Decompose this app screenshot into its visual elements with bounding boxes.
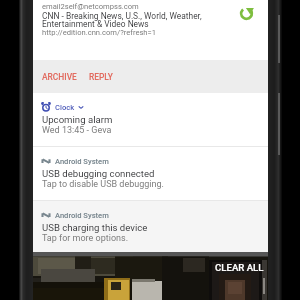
button[interactable]: email2self@netcompss.com — [33, 0, 268, 60]
staticText: Clock — [55, 103, 75, 112]
staticText: CLEAR ALL — [215, 262, 264, 273]
staticText: Upcoming alarm — [42, 114, 113, 125]
staticText: USB charging this device — [42, 222, 148, 233]
staticText: CNN - Breaking News, U.S., World, Weathe… — [42, 11, 202, 21]
staticText: Entertainment & Video News — [42, 19, 149, 29]
staticText: USB debugging connected — [42, 168, 155, 179]
staticText: email2self@netcompss.com — [42, 2, 139, 11]
staticText: Android System — [55, 211, 109, 220]
button[interactable]: Android System — [33, 147, 268, 200]
button[interactable]: REPLY — [89, 72, 113, 82]
button[interactable]: CLEAR ALL — [215, 262, 264, 273]
staticText: Tap to disable USB debugging. — [42, 179, 164, 190]
staticText: http://edition.cnn.com/?refresh=1 — [42, 28, 156, 37]
button[interactable]: Android System — [33, 201, 268, 252]
button[interactable]: ARCHIVE — [42, 72, 77, 82]
button[interactable]: Refresh — [234, 1, 258, 25]
staticText: Android System — [55, 157, 109, 166]
staticText: REPLY — [89, 72, 113, 82]
staticText: Tap for more options. — [42, 233, 129, 244]
button[interactable]: Clock — [33, 93, 268, 146]
staticText: ARCHIVE — [42, 72, 77, 82]
staticText: Wed 13:45 - Geva — [42, 125, 112, 136]
